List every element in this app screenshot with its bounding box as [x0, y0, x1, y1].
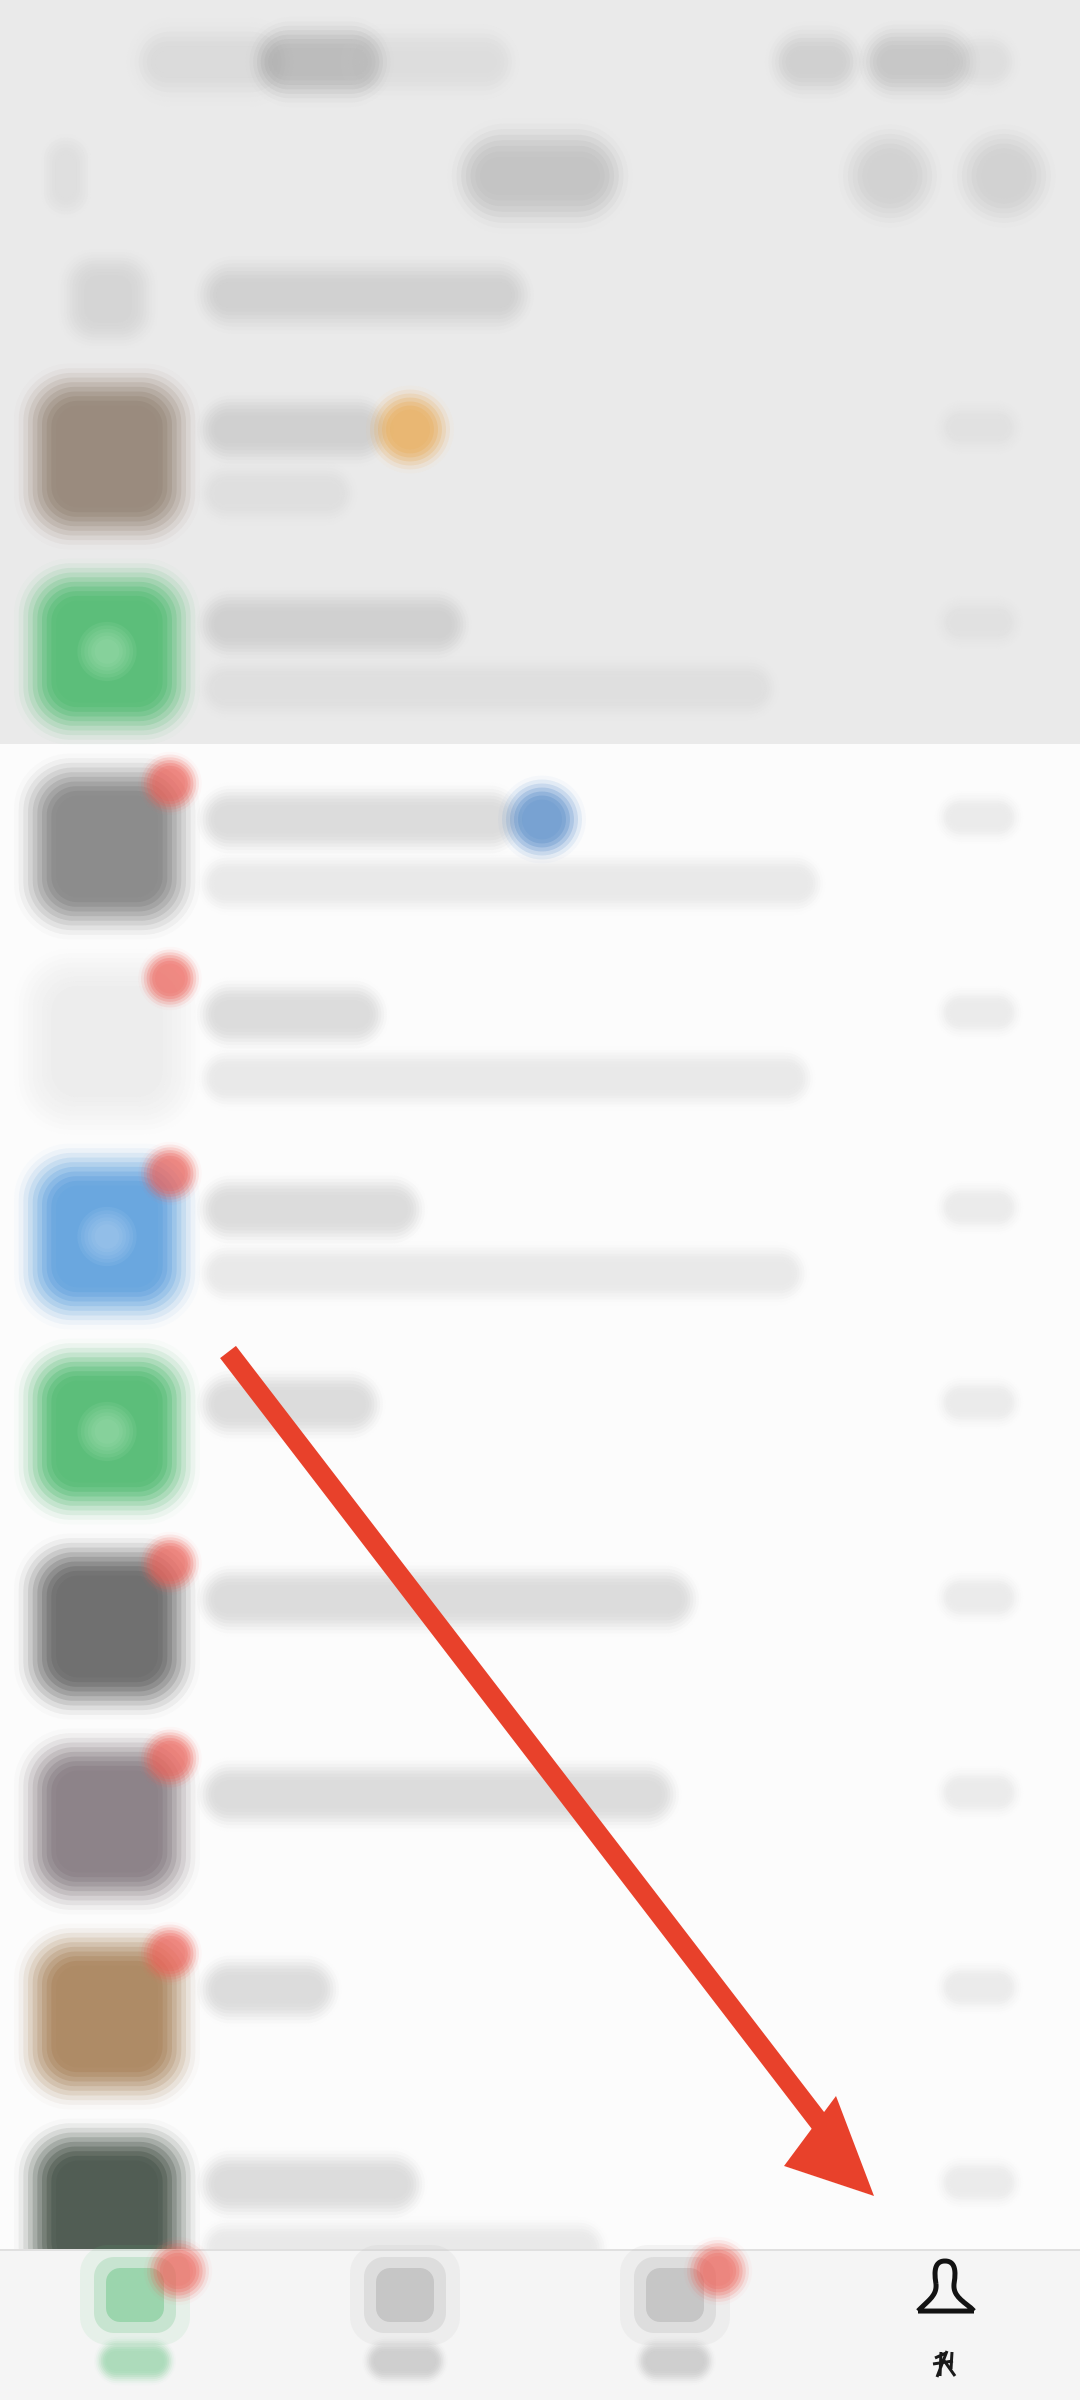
button[interactable]: 我 Me: [810, 2249, 1080, 2400]
button[interactable]: [0, 944, 1080, 1139]
button[interactable]: [0, 1529, 1080, 1724]
button[interactable]: [0, 1919, 1080, 2114]
button[interactable]: 微信 Chats: [0, 2249, 270, 2400]
button[interactable]: [0, 1139, 1080, 1334]
button[interactable]: 发现 Discover: [540, 2249, 810, 2400]
button[interactable]: [0, 1334, 1080, 1529]
button[interactable]: [0, 359, 1080, 554]
button[interactable]: [0, 749, 1080, 944]
button[interactable]: Add: [946, 118, 1062, 233]
button[interactable]: Back: [6, 118, 126, 233]
button[interactable]: [0, 554, 1080, 749]
button[interactable]: 通讯录 Contacts: [270, 2249, 540, 2400]
button[interactable]: [0, 1724, 1080, 1919]
button[interactable]: [0, 237, 1080, 363]
button[interactable]: [0, 2114, 1080, 2309]
button[interactable]: Search: [832, 118, 948, 233]
